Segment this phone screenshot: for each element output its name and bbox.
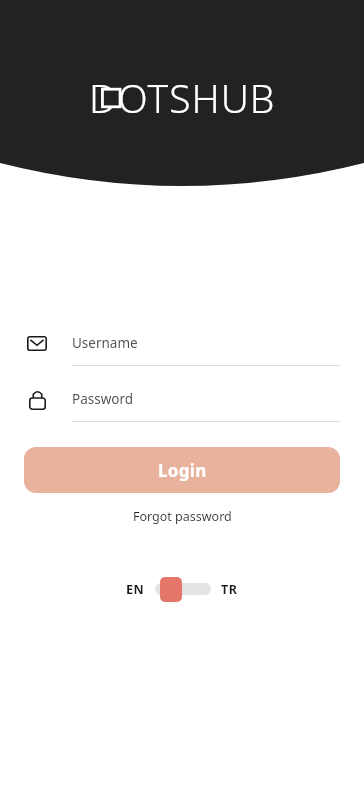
staticText: TR bbox=[221, 581, 238, 598]
staticText: DOTSHUB bbox=[89, 71, 276, 124]
staticText: Login bbox=[158, 459, 207, 482]
other: Password bbox=[29, 389, 46, 410]
button[interactable]: Password bbox=[24, 386, 340, 422]
staticText: Password bbox=[72, 390, 134, 408]
other: Username bbox=[27, 336, 47, 351]
staticText: EN bbox=[126, 581, 145, 598]
button[interactable]: Username bbox=[24, 330, 340, 366]
staticText: Forgot password bbox=[133, 508, 232, 525]
button[interactable]: Language toggle EN TR bbox=[155, 576, 211, 602]
staticText: Username bbox=[72, 334, 138, 352]
button[interactable]: Forgot password bbox=[127, 505, 238, 528]
button[interactable]: Login bbox=[24, 447, 340, 493]
